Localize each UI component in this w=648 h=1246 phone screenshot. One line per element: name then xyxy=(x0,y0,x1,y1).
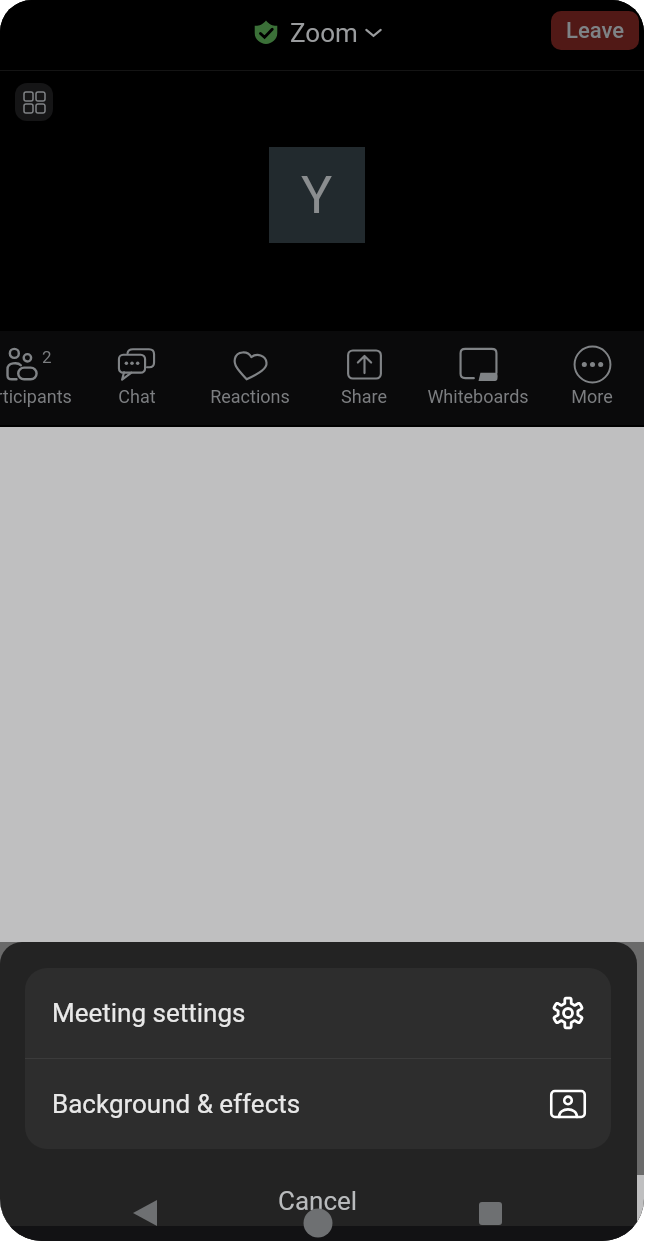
staticText: Cancel xyxy=(278,1186,358,1216)
button[interactable]: Grid view xyxy=(15,83,53,121)
button[interactable]: Reactions xyxy=(193,331,307,427)
button[interactable]: Meeting settings xyxy=(25,968,611,1058)
button[interactable]: Chat xyxy=(80,331,193,427)
button[interactable]: Cancel xyxy=(25,1177,611,1225)
staticText: Leave xyxy=(566,18,625,44)
button[interactable]: Leave xyxy=(551,11,639,50)
button[interactable]: Share xyxy=(307,331,421,427)
button[interactable]: 2 xyxy=(0,331,80,427)
button[interactable]: Background & effects xyxy=(25,1059,611,1149)
staticText: Meeting settings xyxy=(52,998,246,1028)
staticText: Y xyxy=(301,165,333,226)
button[interactable]: Zoom xyxy=(254,17,383,47)
staticText: Background & effects xyxy=(52,1089,301,1119)
staticText: Whiteboards xyxy=(427,386,529,407)
staticText: Zoom xyxy=(290,18,358,48)
staticText: 2 xyxy=(42,347,52,367)
staticText: Reactions xyxy=(210,386,290,407)
button[interactable]: Whiteboards xyxy=(421,331,535,427)
button[interactable]: More xyxy=(535,331,644,427)
staticText: Chat xyxy=(118,386,156,407)
staticText: Share xyxy=(341,386,387,407)
staticText: More xyxy=(571,386,613,407)
staticText: Participants xyxy=(0,386,72,407)
